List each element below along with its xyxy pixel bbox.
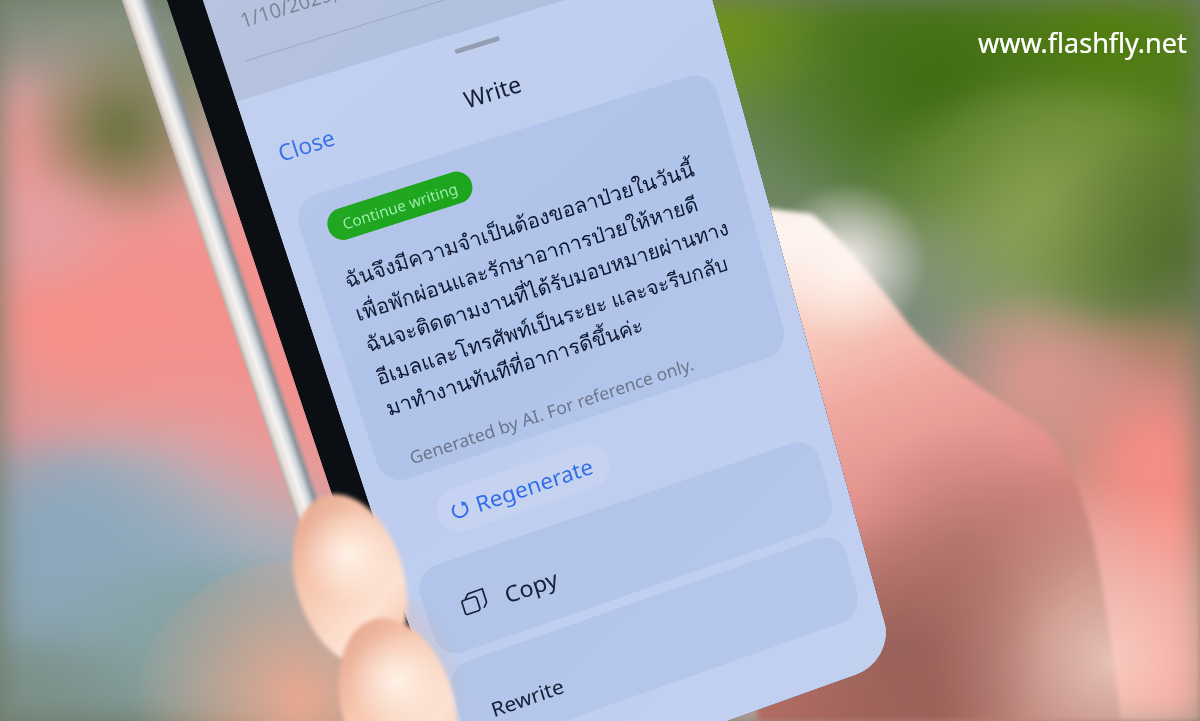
staticText: Write [460, 67, 525, 115]
button[interactable]: Rewrite [444, 531, 863, 721]
staticText: ฉันจึงมีความจำเป็นต้องขอลาป่วยในวันนี้ เ… [340, 147, 752, 425]
staticText: www.flashfly.net [978, 24, 1187, 61]
button[interactable]: Copy [413, 436, 837, 660]
button[interactable]: Regenerate [431, 438, 615, 538]
staticText: Generated by AI. For reference only. [406, 352, 697, 470]
button[interactable]: Continue writing [323, 167, 476, 244]
staticText: Rewrite [487, 671, 568, 721]
staticText: 1/10/2025, 23:07 [236, 0, 394, 34]
button[interactable]: Close [262, 114, 350, 175]
staticText: Continue writing [340, 178, 460, 234]
staticText: Copy [500, 562, 562, 610]
staticText: Close [273, 121, 338, 168]
staticText: Regenerate [471, 450, 596, 518]
